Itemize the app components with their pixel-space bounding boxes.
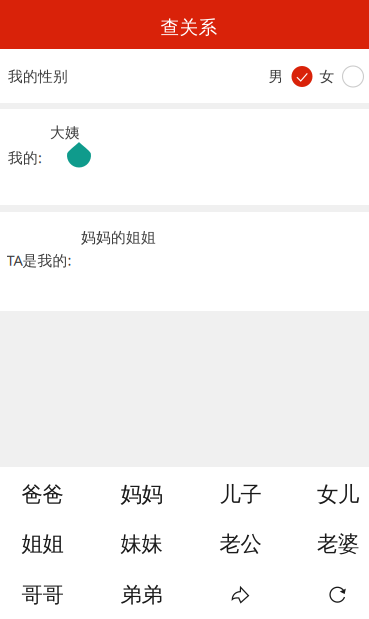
button[interactable]: 哥哥: [0, 570, 88, 619]
staticText: 弟弟: [120, 582, 162, 608]
staticText: 妹妹: [120, 531, 162, 557]
button[interactable]: 女儿: [292, 469, 369, 519]
button[interactable]: 爸爸: [0, 469, 88, 519]
staticText: 女: [319, 67, 334, 85]
staticText: 儿子: [219, 481, 261, 508]
button[interactable]: 妈妈: [95, 469, 187, 519]
staticText: 老婆: [317, 531, 359, 557]
button[interactable]: 老公: [194, 519, 286, 569]
staticText: 妈妈: [120, 481, 162, 508]
staticText: 爸爸: [21, 481, 63, 508]
button[interactable]: 老婆: [292, 519, 369, 569]
staticText: 男: [268, 67, 283, 85]
staticText: 女儿: [317, 481, 359, 508]
staticText: 姐姐: [21, 531, 63, 557]
staticText: 查关系: [160, 16, 217, 39]
staticText: 大姨: [50, 123, 80, 141]
button[interactable]: Refresh: [292, 570, 369, 619]
staticText: 妈妈的姐姐: [81, 228, 156, 246]
button[interactable]: 姐姐: [0, 519, 88, 569]
staticText: 我的:: [8, 148, 42, 167]
button[interactable]: 妹妹: [95, 519, 187, 569]
button[interactable]: 女: [315, 57, 365, 95]
button[interactable]: Share: [194, 570, 286, 619]
staticText: TA是我的:: [6, 250, 71, 270]
button[interactable]: 弟弟: [95, 570, 187, 619]
button[interactable]: 儿子: [194, 469, 286, 519]
staticText: 老公: [219, 531, 261, 557]
staticText: 我的性别: [8, 67, 68, 85]
button[interactable]: 男: [264, 57, 314, 95]
staticText: 哥哥: [21, 582, 63, 608]
